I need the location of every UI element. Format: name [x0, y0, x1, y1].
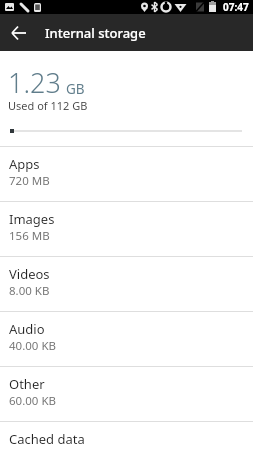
- button[interactable]: Other: [0, 367, 253, 421]
- staticText: Used of 112 GB: [8, 98, 88, 113]
- button[interactable]: Videos: [0, 257, 253, 311]
- staticText: 156 MB: [9, 228, 50, 244]
- staticText: Images: [9, 210, 55, 228]
- staticText: Internal storage: [45, 24, 146, 42]
- staticText: Other: [9, 375, 45, 393]
- staticText: 1.23: [8, 64, 61, 101]
- button[interactable]: Images: [0, 202, 253, 256]
- button[interactable]: Cached data: [0, 422, 253, 450]
- staticText: GB: [66, 80, 85, 98]
- staticText: Cached data: [9, 430, 85, 448]
- staticText: 720 MB: [9, 173, 50, 189]
- staticText: 40.00 KB: [9, 338, 56, 354]
- staticText: 8.00 KB: [9, 283, 50, 299]
- button[interactable]: Audio: [0, 312, 253, 366]
- staticText: Audio: [9, 320, 45, 338]
- button[interactable]: Apps: [0, 147, 253, 201]
- staticText: 07:47: [223, 0, 249, 14]
- staticText: Videos: [9, 265, 50, 283]
- staticText: Apps: [9, 155, 40, 173]
- button[interactable]: [0, 14, 37, 51]
- staticText: 60.00 KB: [9, 393, 56, 409]
